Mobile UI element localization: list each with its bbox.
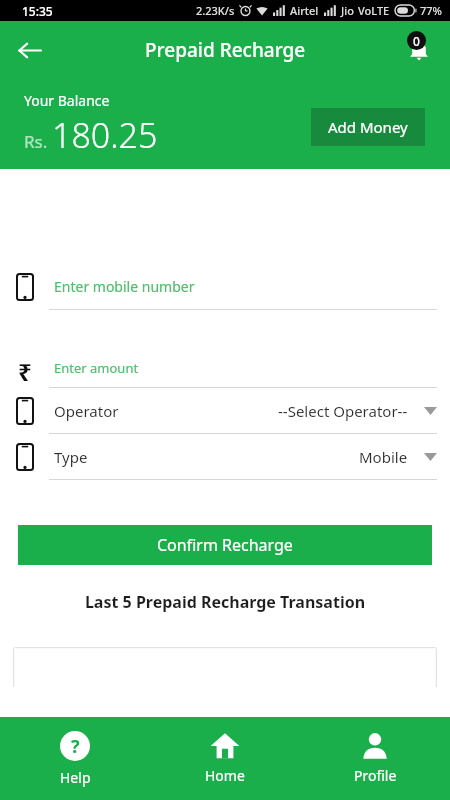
staticText: 0 [413,33,420,49]
button[interactable]: Profile [300,717,450,800]
button[interactable]: ₹ [0,348,450,388]
button[interactable]: Operator [0,388,450,434]
staticText: --Select Operator-- [278,401,408,421]
staticText: Your Balance [24,91,110,110]
staticText: Enter mobile number [54,277,195,296]
button[interactable]: Enter mobile number [0,264,450,310]
button[interactable]: Home [150,717,300,800]
staticText: Type [54,447,88,467]
staticText: Jio [341,3,354,18]
staticText: Last 5 Prepaid Recharge Transation [0,591,450,613]
staticText: 180.25 [52,112,158,158]
staticText: Help [60,768,91,787]
staticText: 2.23K/s [196,3,235,18]
staticText: Add Money [328,117,408,137]
staticText: 15:35 [22,3,53,19]
button[interactable]: Type [0,434,450,480]
staticText: Enter amount [54,359,139,377]
staticText: Mobile [359,447,408,467]
staticText: Operator [54,401,119,421]
button[interactable]: ? [0,717,150,800]
staticText: ₹ [18,355,32,381]
staticText: ? [71,734,80,759]
button[interactable]: Add Money [311,108,425,146]
staticText: VoLTE [358,3,390,18]
button[interactable]: Confirm Recharge [18,525,432,565]
button[interactable] [13,647,437,687]
staticText: Rs. [24,130,48,153]
staticText: Confirm Recharge [157,534,293,556]
staticText: Prepaid Recharge [145,37,306,63]
staticText: Home [205,766,245,785]
button[interactable]: Notifications [396,27,442,73]
staticText: Airtel [290,3,319,18]
button[interactable]: Back [6,27,52,73]
staticText: Profile [354,766,397,785]
staticText: 77% [420,3,442,18]
